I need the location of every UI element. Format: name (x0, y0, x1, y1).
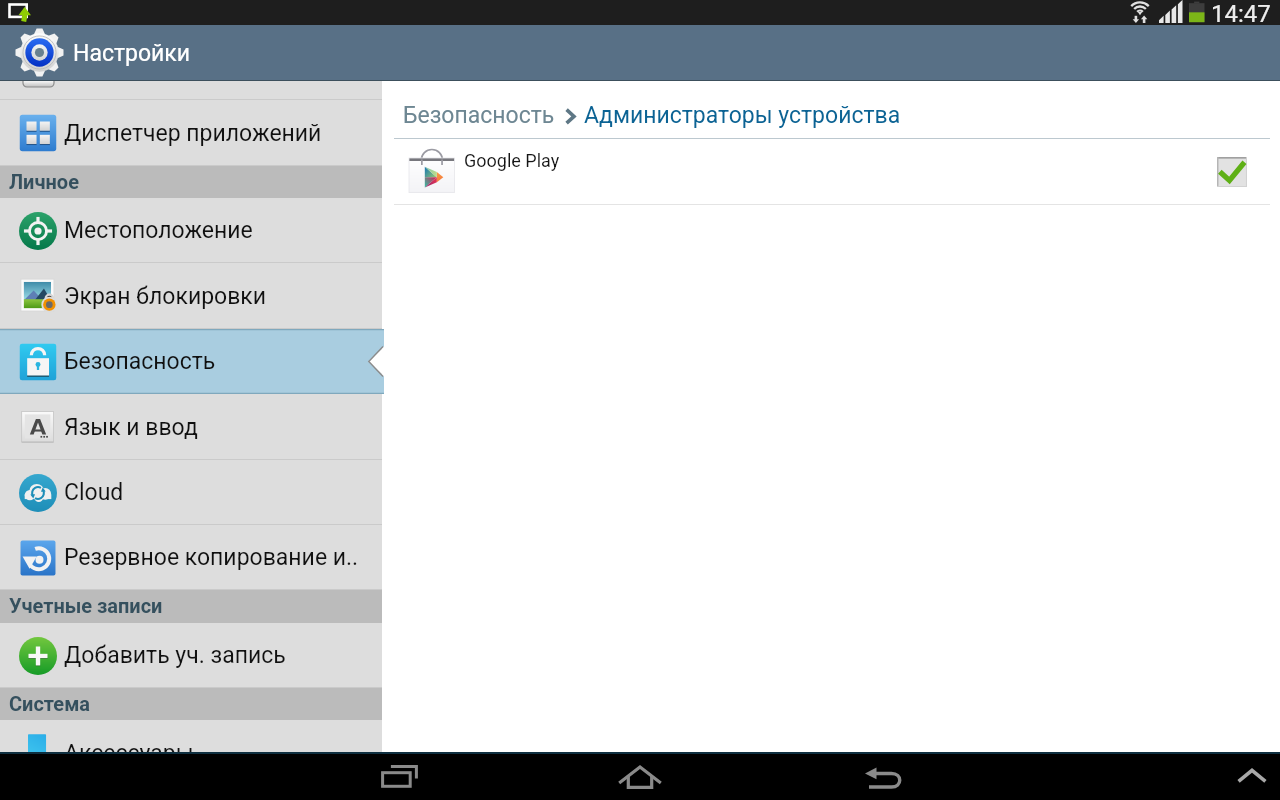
staticText: Система (9, 692, 91, 715)
button[interactable]: Google Play (384, 139, 1280, 204)
button[interactable]: Резервное копирование и.. (0, 525, 382, 590)
staticText: 14:47 (1211, 0, 1271, 25)
button[interactable]: Cloud (0, 460, 382, 525)
staticText: Google Play (464, 150, 560, 171)
button[interactable]: Home (612, 764, 668, 800)
staticText: Язык и ввод (64, 414, 198, 441)
button[interactable]: Show keyboard (1228, 752, 1276, 800)
button[interactable]: Recent apps (365, 757, 433, 800)
staticText: Экран блокировки (64, 283, 267, 310)
button[interactable]: Добавить уч. запись (0, 623, 382, 688)
staticText: Настройки (73, 40, 191, 67)
button[interactable]: Местоположение (0, 198, 382, 263)
button[interactable]: Безопасность (0, 329, 382, 394)
staticText: Администраторы устройства (584, 102, 901, 129)
button[interactable]: Аксессуары (0, 720, 382, 752)
button[interactable]: Диспетчер приложений (0, 100, 382, 166)
staticText: Личное (9, 170, 79, 193)
staticText: Cloud (64, 479, 124, 506)
staticText: Безопасность (64, 348, 216, 375)
staticText: Добавить уч. запись (64, 642, 286, 669)
staticText: Аксессуары (64, 740, 194, 752)
button[interactable]: Безопасность (403, 102, 555, 129)
staticText: Резервное копирование и.. (64, 544, 359, 571)
staticText: Диспетчер приложений (64, 120, 322, 147)
button[interactable]: Google Play device admin enabled (1217, 157, 1247, 187)
button[interactable]: Язык и ввод (0, 394, 382, 460)
button[interactable]: Back (862, 767, 912, 800)
staticText: Местоположение (64, 217, 253, 244)
button[interactable]: Экран блокировки (0, 263, 382, 329)
staticText: Учетные записи (9, 594, 163, 617)
